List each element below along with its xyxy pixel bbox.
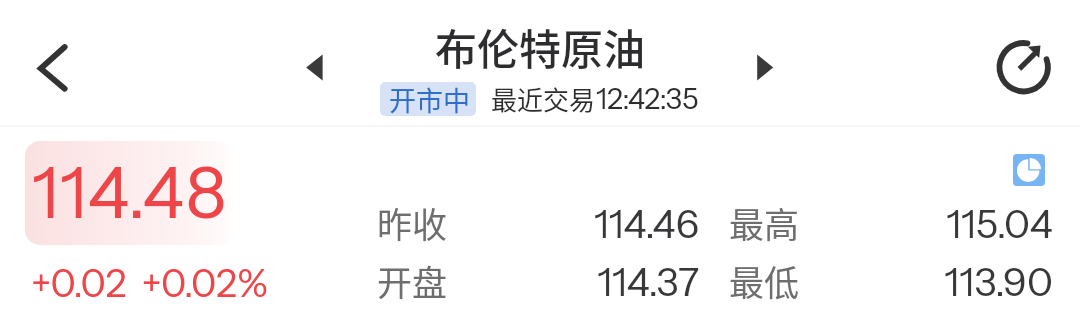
staticText: 开盘 [377,255,448,306]
staticText: 114.37 [499,258,699,306]
staticText: 113.90 [853,258,1053,306]
button[interactable]: 布伦特原油 [435,16,646,77]
button[interactable]: 开盘 [377,255,448,306]
button[interactable]: Previous [300,50,330,80]
button[interactable]: Next [751,50,781,80]
button[interactable]: 开市中 [380,82,476,116]
button[interactable]: Share [993,38,1055,100]
staticText: 12:42:35 [596,81,699,116]
button[interactable]: 最低 [729,255,800,306]
button[interactable]: 昨收 [377,197,448,248]
button[interactable]: Back [14,32,76,94]
staticText: +0.02 +0.02% [31,260,268,306]
staticText: 114.46 [499,200,699,248]
staticText: 115.04 [853,200,1053,248]
button[interactable]: Chart [1013,154,1045,186]
staticText: 布伦特原油 [435,16,646,77]
staticText: 最低 [729,255,800,306]
staticText: 昨收 [377,197,448,248]
staticText: 开市中 [389,82,470,114]
staticText: 114.48 [32,150,228,235]
button[interactable]: 114.48 [32,150,228,235]
staticText: 最近交易 [491,80,596,118]
staticText: 最高 [729,197,800,248]
button[interactable]: 最高 [729,197,800,248]
